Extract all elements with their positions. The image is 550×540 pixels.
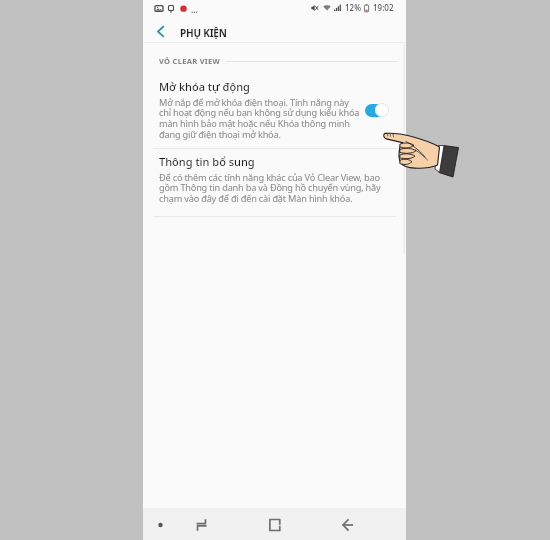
staticText: 12% — [345, 2, 361, 13]
button[interactable]: Navigate up — [147, 21, 173, 43]
button[interactable]: Menu — [146, 508, 174, 540]
button[interactable]: Recent apps — [187, 508, 215, 540]
staticText: VỎ CLEAR VIEW — [159, 56, 221, 66]
staticText: PHỤ KIỆN — [180, 26, 227, 40]
staticText: Để có thêm các tính năng khác của Vỏ Cle… — [159, 171, 387, 205]
staticText: Mở nắp để mở khóa điện thoại. Tính năng … — [159, 96, 362, 141]
staticText: 19:02 — [373, 2, 394, 13]
button[interactable]: Mở khóa tự động — [143, 76, 406, 147]
staticText: Thông tin bổ sung — [159, 154, 255, 169]
button[interactable]: Auto unlock switch — [365, 103, 389, 117]
button[interactable]: Home — [260, 508, 288, 540]
button[interactable]: Thông tin bổ sung — [143, 151, 406, 221]
button[interactable]: Back — [333, 508, 361, 540]
staticText: Mở khóa tự động — [159, 79, 250, 94]
staticText: ... — [191, 4, 198, 15]
